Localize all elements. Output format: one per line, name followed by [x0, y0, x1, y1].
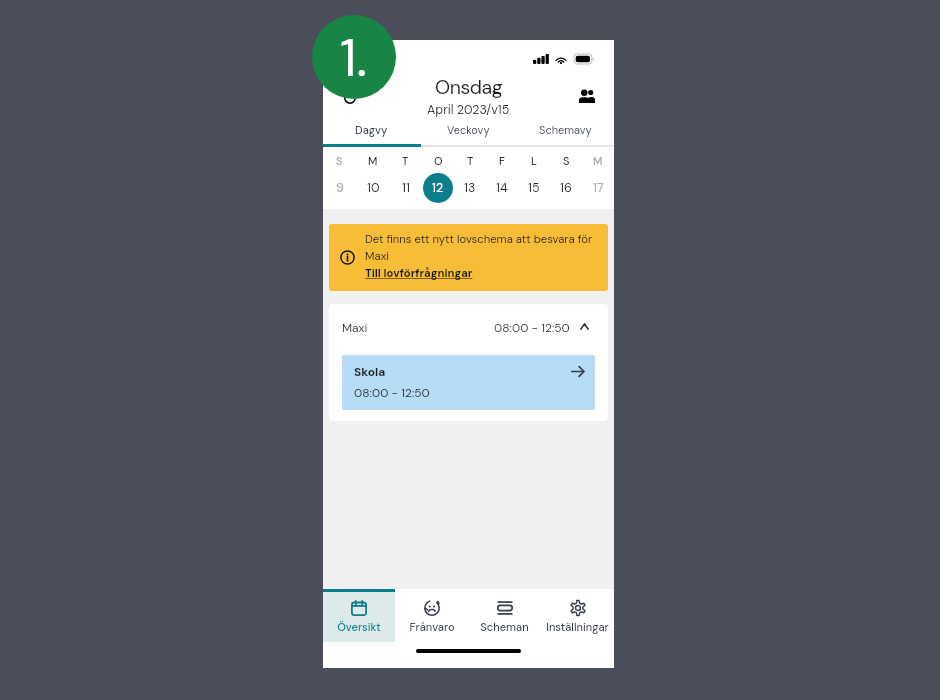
staticText: Schemavy [539, 123, 592, 137]
staticText: Onsdag [435, 75, 503, 100]
button[interactable]: Dagvy [323, 123, 420, 147]
staticText: L [531, 154, 537, 168]
staticText: April 2023/v15 [427, 102, 510, 118]
button[interactable]: Schemavy [517, 123, 614, 147]
button[interactable]: 11 [391, 173, 421, 203]
button[interactable]: Veckovy [420, 123, 517, 147]
staticText: T [467, 154, 474, 168]
staticText: 1. [340, 23, 368, 92]
staticText: 10 [367, 180, 380, 196]
button[interactable]: Profil [339, 87, 361, 109]
staticText: Översikt [337, 620, 381, 634]
staticText: 9 [336, 180, 344, 196]
button[interactable]: 15 [519, 173, 549, 203]
staticText: S [336, 154, 343, 168]
button[interactable]: 16 [551, 173, 581, 203]
staticText: 14 [496, 180, 508, 196]
staticText: S [563, 154, 570, 168]
button[interactable]: 12 [423, 173, 453, 203]
button[interactable]: Frånvaro [395, 589, 468, 642]
button[interactable]: 13 [455, 173, 485, 203]
staticText: Inställningar [546, 620, 609, 634]
staticText: Frånvaro [409, 620, 455, 634]
button[interactable]: Inställningar [541, 589, 614, 642]
staticText: Veckovy [447, 123, 490, 137]
button[interactable]: Scheman [468, 589, 541, 642]
staticText: Det finns ett nytt lovschema att besvara… [365, 232, 596, 263]
button[interactable]: 9 [325, 173, 355, 203]
staticText: F [499, 154, 505, 168]
other: Visa Skola [571, 365, 585, 378]
button[interactable]: 10 [358, 173, 388, 203]
button[interactable]: Maxi [329, 304, 608, 355]
staticText: 16 [560, 180, 572, 196]
button[interactable]: Skola [342, 355, 595, 410]
other: Fall ihop [580, 323, 589, 330]
button[interactable]: 14 [487, 173, 517, 203]
staticText: 17 [593, 180, 604, 196]
staticText: O [434, 154, 443, 168]
button[interactable]: Det finns ett nytt lovschema att besvara… [329, 224, 608, 291]
staticText: 12 [432, 180, 444, 196]
button[interactable]: Översikt [323, 589, 395, 642]
staticText: T [402, 154, 409, 168]
button[interactable]: 17 [583, 173, 613, 203]
staticText: 11 [402, 180, 410, 196]
staticText: Till lovförfrågningar [365, 266, 473, 281]
staticText: 08:00 - 12:50 [354, 385, 430, 401]
staticText: Dagvy [355, 123, 388, 137]
staticText: 15 [528, 180, 540, 196]
staticText: Maxi [342, 320, 368, 336]
staticText: 08:00 - 12:50 [494, 320, 570, 336]
staticText: Scheman [480, 620, 529, 634]
button[interactable]: Kontakter [573, 82, 601, 110]
staticText: 13 [464, 180, 476, 196]
staticText: M [368, 154, 378, 168]
staticText: M [593, 154, 603, 168]
staticText: Skola [354, 364, 386, 380]
